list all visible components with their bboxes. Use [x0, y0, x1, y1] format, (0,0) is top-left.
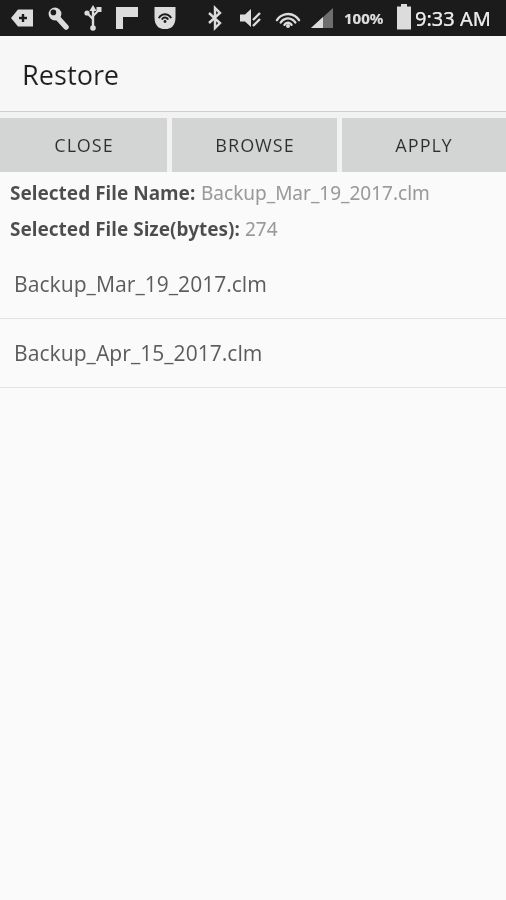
button[interactable]: CLOSE: [0, 118, 167, 172]
staticText: 9:33 AM: [415, 5, 491, 32]
staticText: Backup_Mar_19_2017.clm: [201, 180, 430, 206]
staticText: Backup_Apr_15_2017.clm: [14, 339, 263, 368]
staticText: 274: [245, 216, 278, 242]
staticText: Selected File Name:: [10, 180, 201, 206]
staticText: Backup_Mar_19_2017.clm: [14, 270, 267, 299]
button[interactable]: Backup_Mar_19_2017.clm: [0, 250, 506, 318]
button[interactable]: Backup_Apr_15_2017.clm: [0, 319, 506, 387]
staticText: Selected File Size(bytes):: [10, 216, 245, 242]
staticText: BROWSE: [215, 133, 295, 158]
staticText: Restore: [22, 56, 119, 93]
button[interactable]: BROWSE: [172, 118, 337, 172]
button[interactable]: APPLY: [342, 118, 506, 172]
staticText: 100%: [344, 8, 384, 28]
staticText: CLOSE: [54, 133, 114, 158]
staticText: APPLY: [395, 133, 453, 158]
